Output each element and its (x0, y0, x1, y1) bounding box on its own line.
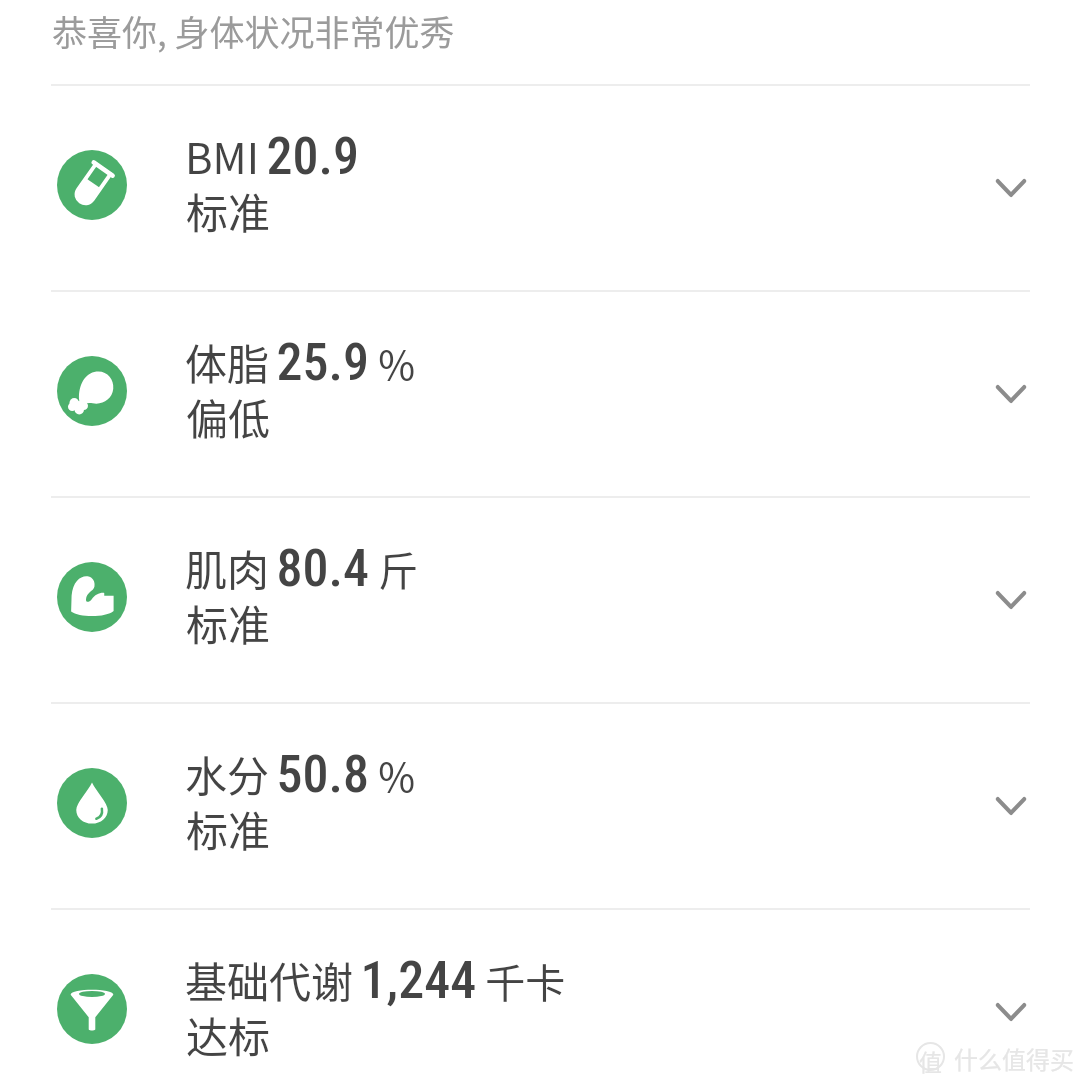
button[interactable] (0, 704, 1080, 908)
staticText: 水分 50.8 % (185, 743, 416, 804)
staticText: 基础代谢 1,244 千卡 (185, 949, 566, 1010)
button[interactable]: 展开 体脂 (965, 348, 1057, 440)
button[interactable]: 展开 肌肉 (965, 554, 1057, 646)
button[interactable] (0, 910, 1080, 1081)
staticText: 恭喜你, 身体状况非常优秀 (52, 5, 455, 56)
staticText: 什么值得买 (954, 1041, 1074, 1076)
button[interactable] (0, 498, 1080, 702)
staticText: 值 (919, 1044, 942, 1077)
staticText: 体脂 25.9 % (185, 331, 416, 392)
button[interactable]: 展开 基础代谢 (965, 966, 1057, 1058)
button[interactable] (0, 86, 1080, 290)
button[interactable] (0, 292, 1080, 496)
staticText: 肌肉 80.4 斤 (185, 537, 419, 598)
staticText: 标准 (186, 180, 271, 241)
staticText: 达标 (186, 1004, 271, 1065)
button[interactable]: 展开 水分 (965, 760, 1057, 852)
staticText: 标准 (186, 798, 271, 859)
staticText: 偏低 (186, 386, 271, 447)
staticText: BMI 20.9 (185, 125, 360, 186)
button[interactable]: 展开 BMI (965, 142, 1057, 234)
staticText: 标准 (186, 592, 271, 653)
